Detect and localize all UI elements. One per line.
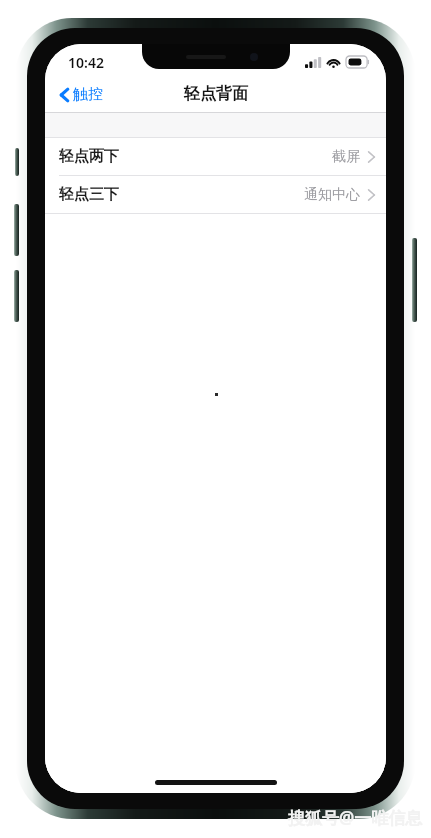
staticText: 轻点两下 bbox=[59, 147, 119, 166]
staticText: 触控 bbox=[73, 85, 103, 104]
staticText: 轻点三下 bbox=[59, 185, 119, 204]
staticText: 搜狐号@一唯信息 bbox=[288, 806, 423, 829]
staticText: 截屏 bbox=[332, 148, 360, 166]
button[interactable]: 触控 bbox=[53, 81, 109, 108]
button[interactable]: 轻点三下 bbox=[45, 176, 386, 213]
staticText: 轻点背面 bbox=[184, 84, 248, 104]
staticText: 通知中心 bbox=[304, 186, 360, 204]
button[interactable]: 轻点两下 bbox=[45, 138, 386, 175]
staticText: 10:42 bbox=[68, 53, 104, 72]
